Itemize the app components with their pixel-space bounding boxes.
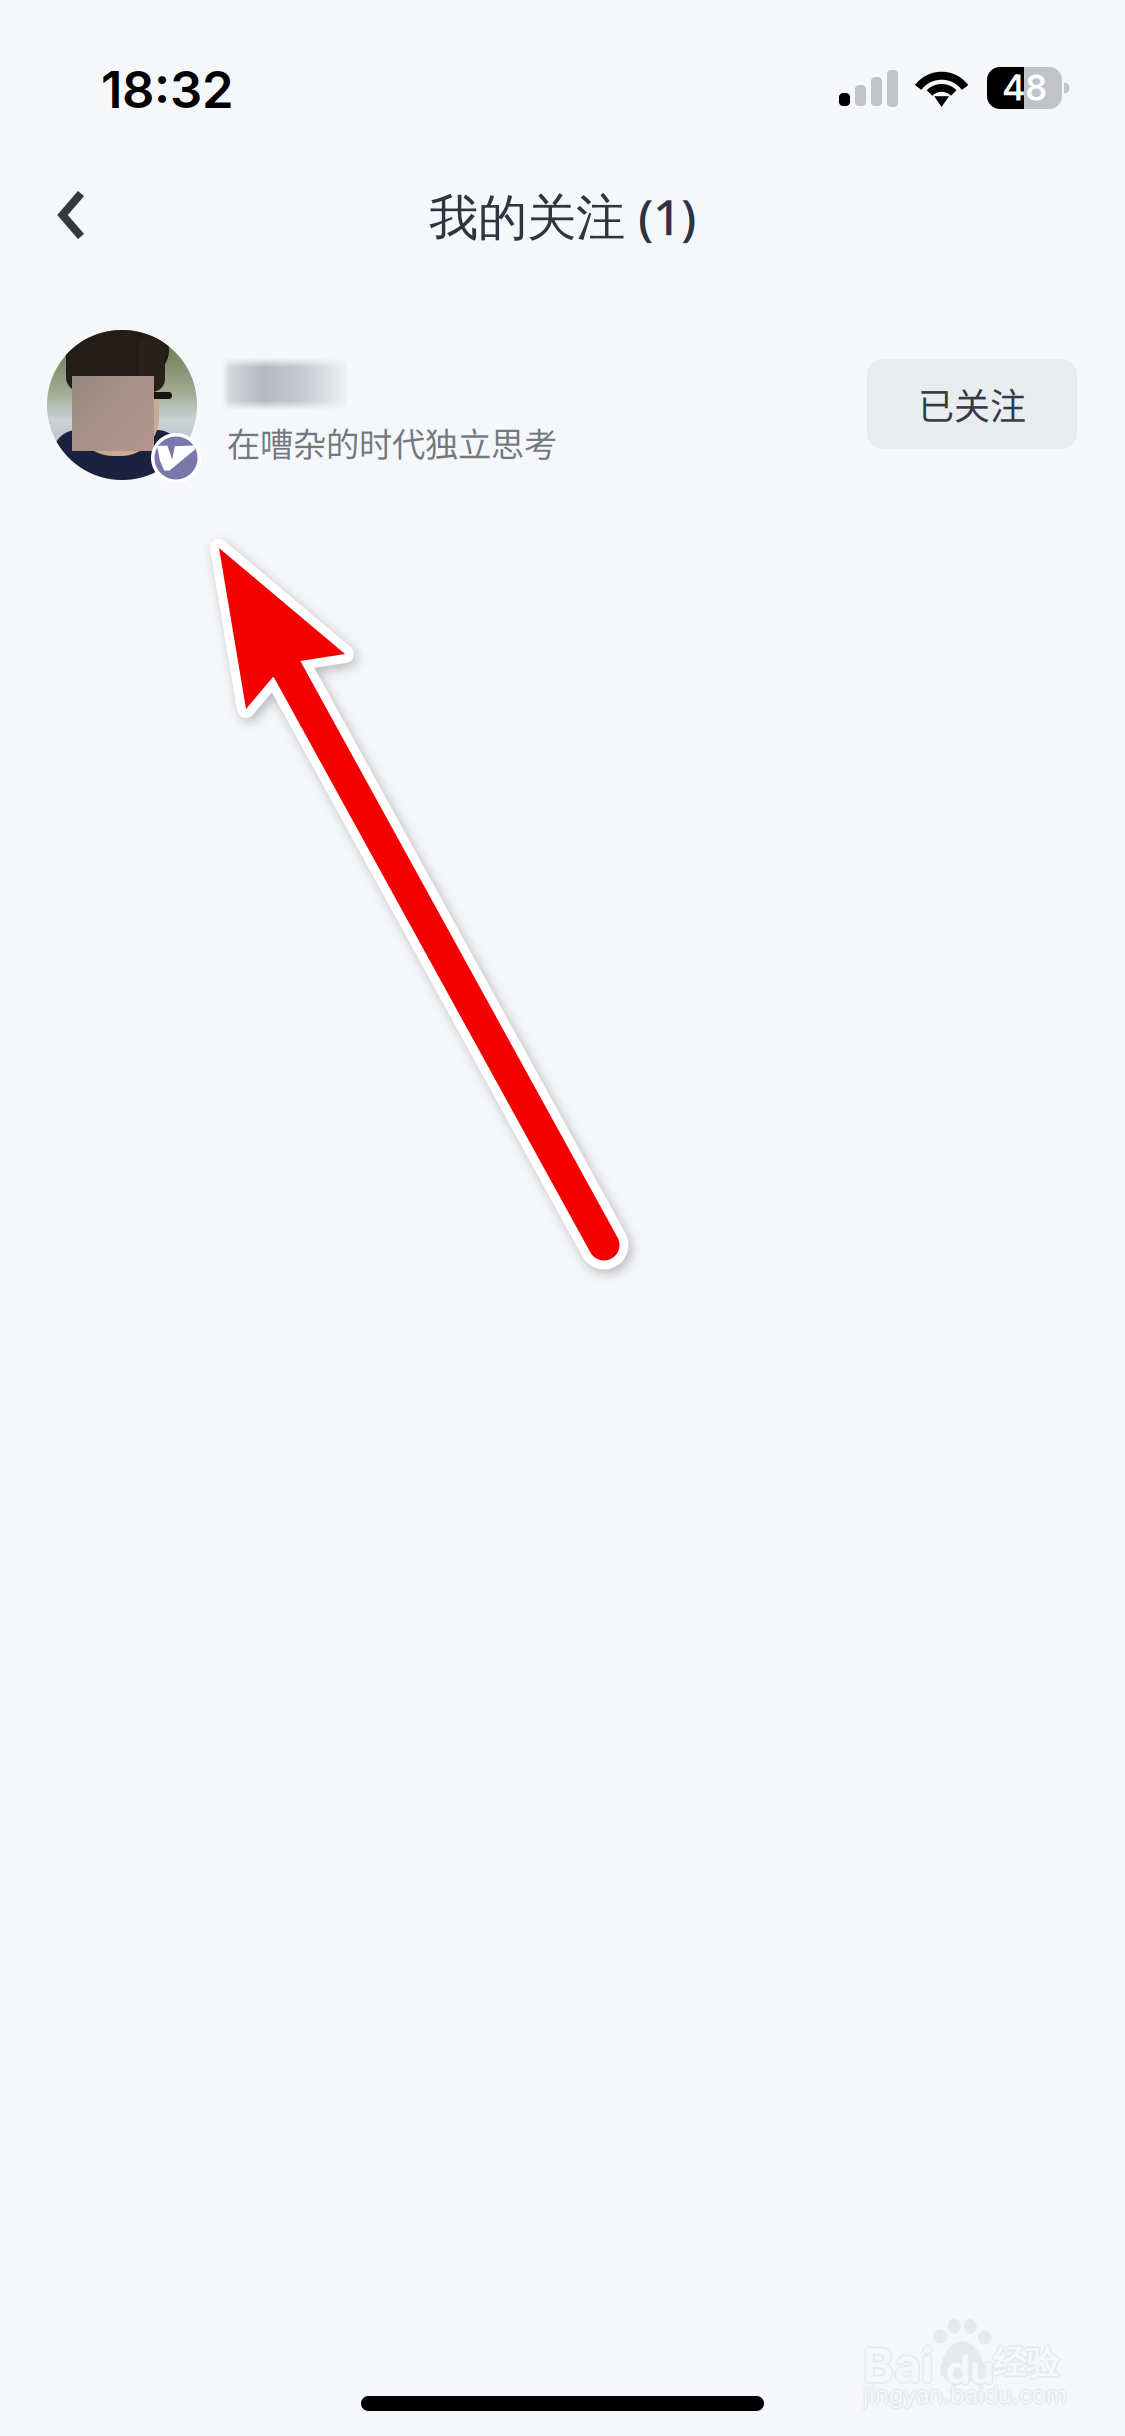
staticText: Bai xyxy=(863,2335,934,2392)
staticText: 已关注 xyxy=(918,378,1026,430)
staticText: 经验 xyxy=(993,2342,1059,2384)
staticText: Bai xyxy=(863,2339,934,2395)
staticText: Bai xyxy=(865,2337,936,2393)
staticText: 经验 xyxy=(995,2342,1061,2384)
staticText: jingyan.baidu.com xyxy=(863,2380,1067,2409)
staticText: 经验 xyxy=(991,2342,1057,2384)
staticText: du xyxy=(946,2347,994,2395)
staticText: jingyan.baidu.com xyxy=(865,2380,1069,2409)
staticText: du xyxy=(946,2345,994,2393)
staticText: jingyan.baidu.com xyxy=(861,2380,1065,2409)
staticText: 48 xyxy=(1002,67,1046,109)
staticText: Bai xyxy=(863,2337,934,2393)
staticText: 经验 xyxy=(993,2340,1059,2382)
staticText: jingyan.baidu.com xyxy=(863,2378,1067,2407)
staticText: du xyxy=(948,2345,996,2393)
staticText: du xyxy=(944,2345,992,2393)
staticText: jingyan.baidu.com xyxy=(863,2382,1067,2411)
staticText: 经验 xyxy=(993,2344,1059,2386)
staticText: 我的关注 (1) xyxy=(429,182,696,250)
staticText: du xyxy=(946,2343,994,2392)
staticText: 18:32 xyxy=(101,59,234,120)
button[interactable]: Back xyxy=(41,166,141,262)
staticText: Bai xyxy=(861,2337,932,2393)
staticText: 在嘈杂的时代独立思考 xyxy=(227,418,557,466)
button[interactable]: 在嘈杂的时代独立思考 xyxy=(0,304,845,486)
button[interactable]: 已关注 xyxy=(867,359,1077,449)
